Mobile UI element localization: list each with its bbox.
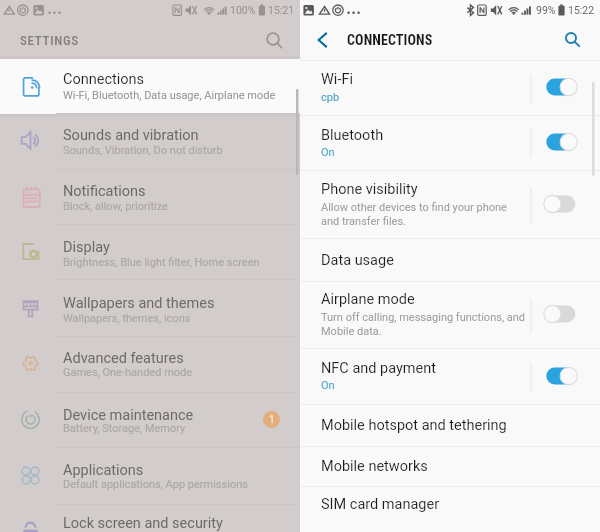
button[interactable] bbox=[0, 224, 300, 279]
staticText: On bbox=[321, 379, 335, 392]
staticText: Turn off calling, messaging functions, a… bbox=[321, 311, 526, 324]
button[interactable] bbox=[0, 447, 300, 504]
button[interactable] bbox=[542, 303, 580, 325]
staticText: Block, allow, prioritize bbox=[63, 200, 168, 213]
button[interactable] bbox=[542, 193, 580, 215]
staticText: Default applications, App permissions bbox=[63, 478, 248, 491]
staticText: Notifications bbox=[63, 183, 146, 200]
staticText: NFC and payment bbox=[321, 360, 437, 377]
staticText: On bbox=[321, 146, 335, 159]
staticText: 99% bbox=[536, 4, 556, 16]
button[interactable] bbox=[300, 170, 600, 238]
staticText: Mobile data. bbox=[321, 325, 382, 338]
staticText: Connections bbox=[63, 71, 145, 88]
button[interactable] bbox=[0, 279, 300, 336]
button[interactable] bbox=[0, 59, 300, 114]
staticText: Games, One-handed mode bbox=[63, 366, 193, 379]
staticText: Device maintenance bbox=[63, 407, 194, 424]
staticText: Mobile hotspot and tethering bbox=[321, 417, 507, 434]
button[interactable] bbox=[542, 131, 580, 153]
staticText: and transfer files. bbox=[321, 215, 407, 228]
staticText: Applications bbox=[63, 462, 144, 479]
button[interactable] bbox=[0, 336, 300, 392]
button[interactable] bbox=[542, 76, 580, 98]
staticText: 15:22 bbox=[568, 4, 595, 16]
staticText: 1 bbox=[269, 414, 275, 426]
button[interactable] bbox=[300, 238, 600, 281]
staticText: Sounds, Vibration, Do not disturb bbox=[63, 144, 223, 157]
button[interactable] bbox=[0, 113, 300, 169]
staticText: CONNECTIONS bbox=[347, 32, 433, 48]
staticText: Data usage bbox=[321, 252, 394, 269]
button[interactable] bbox=[300, 404, 600, 446]
button[interactable] bbox=[300, 115, 600, 170]
staticText: Bluetooth bbox=[321, 127, 384, 144]
staticText: Lock screen and security bbox=[63, 515, 223, 532]
staticText: Mobile networks bbox=[321, 458, 428, 475]
button[interactable] bbox=[0, 504, 300, 532]
button[interactable] bbox=[300, 446, 600, 486]
staticText: Brightness, Blue light filter, Home scre… bbox=[63, 256, 260, 269]
button[interactable] bbox=[300, 60, 600, 115]
staticText: SETTINGS bbox=[20, 33, 79, 48]
staticText: cpb bbox=[321, 91, 340, 104]
button[interactable] bbox=[300, 281, 600, 348]
staticText: Wallpapers and themes bbox=[63, 295, 215, 312]
button[interactable] bbox=[300, 486, 600, 527]
staticText: Phone visibility bbox=[321, 181, 418, 198]
staticText: Wi-Fi bbox=[321, 71, 353, 88]
staticText: Advanced features bbox=[63, 350, 184, 367]
button[interactable]: 1 bbox=[0, 392, 300, 447]
button[interactable]: Back bbox=[308, 26, 336, 54]
staticText: 15:21 bbox=[268, 4, 295, 16]
button[interactable]: Search bbox=[259, 25, 287, 53]
staticText: Battery, Storage, Memory bbox=[63, 422, 186, 435]
staticText: Airplane mode bbox=[321, 291, 415, 308]
staticText: Display bbox=[63, 239, 110, 256]
staticText: Sounds and vibration bbox=[63, 127, 199, 144]
staticText: 100% bbox=[230, 4, 256, 16]
button[interactable] bbox=[542, 365, 580, 387]
staticText: Wallpapers, themes, icons bbox=[63, 312, 191, 325]
staticText: Wi-Fi, Bluetooth, Data usage, Airplane m… bbox=[63, 89, 276, 102]
button[interactable]: Search bbox=[557, 24, 585, 52]
staticText: Allow other devices to find your phone bbox=[321, 201, 507, 214]
button[interactable] bbox=[0, 169, 300, 224]
button[interactable] bbox=[300, 348, 600, 404]
staticText: SIM card manager bbox=[321, 496, 440, 513]
